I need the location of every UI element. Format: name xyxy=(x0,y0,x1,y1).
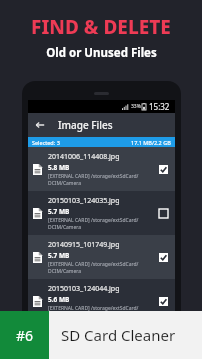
staticText: #6 xyxy=(16,326,34,345)
button[interactable]: Back xyxy=(28,113,52,137)
staticText: [EXTERNAL CARD] /storage/extSdCard/ xyxy=(48,261,139,268)
button[interactable]: Unchecked xyxy=(156,206,170,220)
staticText: 5.5 MB xyxy=(48,335,70,344)
button[interactable]: #6 xyxy=(0,311,202,359)
staticText: [EXTERNAL CARD] /storage/extSdCard/ xyxy=(48,217,139,224)
staticText: 20150103_124035.jpg xyxy=(48,196,120,206)
button[interactable]: Checked xyxy=(156,162,170,176)
staticText: 5.8 MB xyxy=(48,163,70,172)
staticText: DCIM/Camera xyxy=(48,180,82,187)
button[interactable]: Checked xyxy=(156,250,170,264)
staticText: SD Card Cleaner xyxy=(61,325,176,345)
staticText: 20140915_101749.jpg xyxy=(48,240,120,250)
button[interactable]: 20150103_124035.jpg xyxy=(28,191,175,235)
staticText: 33% xyxy=(131,103,141,110)
button[interactable]: 20140915_101749.jpg xyxy=(28,235,175,279)
staticText: [EXTERNAL CARD] /storage/extSdCard/ xyxy=(48,345,139,352)
button[interactable]: 20150103_124102.jpg xyxy=(28,323,175,359)
staticText: FIND & DELETE xyxy=(31,14,171,40)
staticText: 5.7 MB xyxy=(48,207,70,216)
staticText: 20141006_114408.jpg xyxy=(48,152,120,162)
staticText: 5.6 MB xyxy=(48,295,70,304)
staticText: [EXTERNAL CARD] /storage/extSdCard/ xyxy=(48,173,139,180)
staticText: Selected: 3 xyxy=(32,139,60,146)
staticText: DCIM/Camera xyxy=(48,352,82,359)
button[interactable]: 20141006_114408.jpg xyxy=(28,147,175,191)
staticText: DCIM/Camera xyxy=(48,268,82,275)
staticText: 17.1 MB/2.2 GB xyxy=(131,139,171,146)
staticText: 5.7 MB xyxy=(48,251,70,260)
button[interactable]: Unchecked xyxy=(156,334,170,348)
staticText: [EXTERNAL CARD] /storage/extSdCard/ xyxy=(48,305,139,312)
staticText: 20150103_124102.jpg xyxy=(48,324,120,334)
staticText: Image Files xyxy=(58,118,113,132)
staticText: 20150103_124044.jpg xyxy=(48,284,120,294)
staticText: DCIM/Camera xyxy=(48,224,82,231)
staticText: 15:32 xyxy=(149,101,170,112)
button[interactable]: 20150103_124044.jpg xyxy=(28,279,175,323)
button[interactable]: Checked xyxy=(156,294,170,308)
staticText: DCIM/Camera xyxy=(48,312,82,319)
staticText: Old or Unused Files xyxy=(46,45,157,61)
